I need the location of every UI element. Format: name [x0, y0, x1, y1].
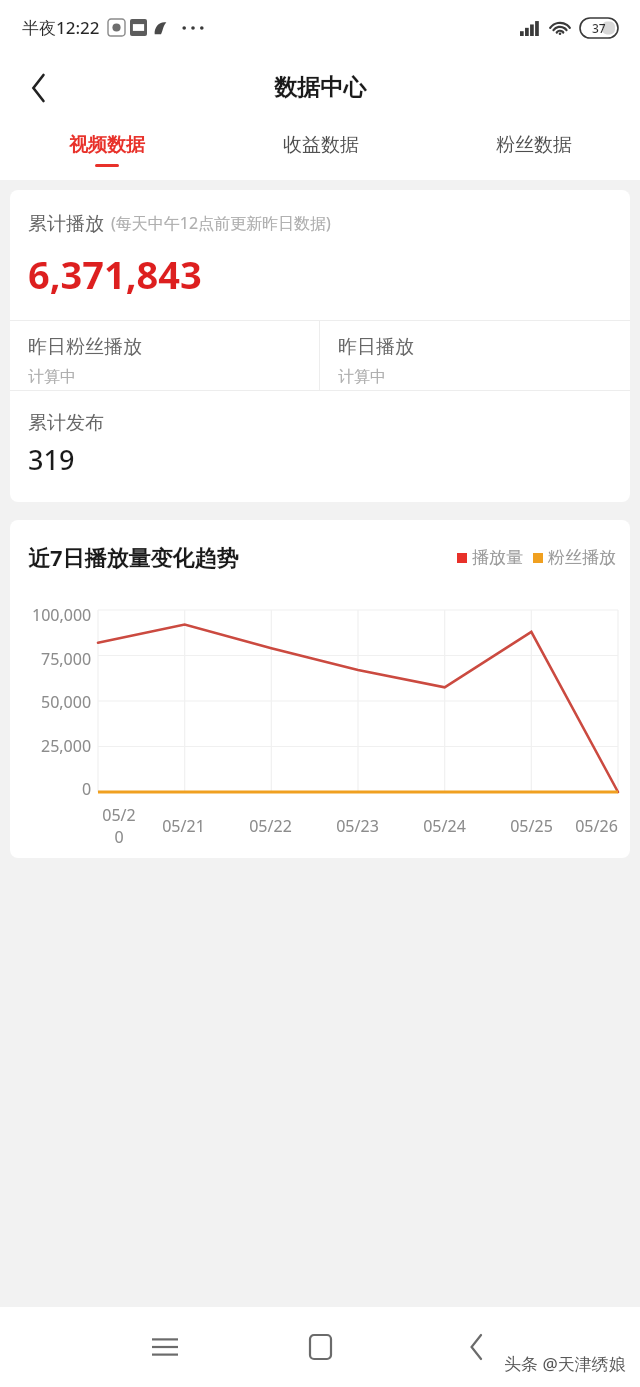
staticText: 视频数据: [69, 133, 145, 157]
staticText: 05/20: [98, 804, 140, 848]
staticText: 05/24: [423, 815, 466, 837]
staticText: 37: [592, 20, 606, 36]
button[interactable]: 收益数据: [214, 120, 427, 180]
staticText: 数据中心: [274, 73, 366, 102]
button[interactable]: 视频数据: [0, 120, 214, 180]
staticText: 100,000: [32, 604, 92, 626]
staticText: 计算中: [28, 367, 76, 387]
staticText: 319: [28, 441, 75, 478]
staticText: 05/25: [510, 815, 553, 837]
button[interactable]: Back: [445, 1316, 507, 1378]
staticText: 粉丝数据: [496, 133, 572, 157]
button[interactable]: 昨日播放: [320, 321, 630, 390]
staticText: 05/23: [336, 815, 379, 837]
staticText: 25,000: [41, 735, 92, 757]
staticText: 05/26: [575, 815, 618, 837]
button[interactable]: 昨日粉丝播放: [10, 321, 319, 390]
staticText: (每天中午12点前更新昨日数据): [111, 212, 331, 234]
staticText: 计算中: [338, 367, 386, 387]
staticText: 粉丝播放: [548, 547, 616, 568]
staticText: 半夜12:22: [22, 16, 100, 39]
staticText: 昨日播放: [338, 335, 414, 359]
button[interactable]: Home: [289, 1316, 351, 1378]
staticText: 累计发布: [28, 411, 104, 435]
staticText: 累计播放: [28, 212, 104, 236]
staticText: 50,000: [41, 691, 92, 713]
staticText: 收益数据: [283, 133, 359, 157]
staticText: 05/21: [162, 815, 205, 837]
button[interactable]: Back: [14, 63, 64, 113]
staticText: 近7日播放量变化趋势: [28, 542, 239, 572]
button[interactable]: 粉丝数据: [427, 120, 640, 180]
staticText: 75,000: [41, 648, 92, 670]
staticText: 昨日粉丝播放: [28, 335, 142, 359]
staticText: 6,371,843: [28, 248, 202, 300]
staticText: 头条 @天津绣娘: [504, 1352, 626, 1375]
button[interactable]: Recent apps: [134, 1316, 196, 1378]
staticText: 05/22: [249, 815, 292, 837]
staticText: 0: [82, 778, 92, 800]
staticText: 播放量: [472, 547, 523, 568]
